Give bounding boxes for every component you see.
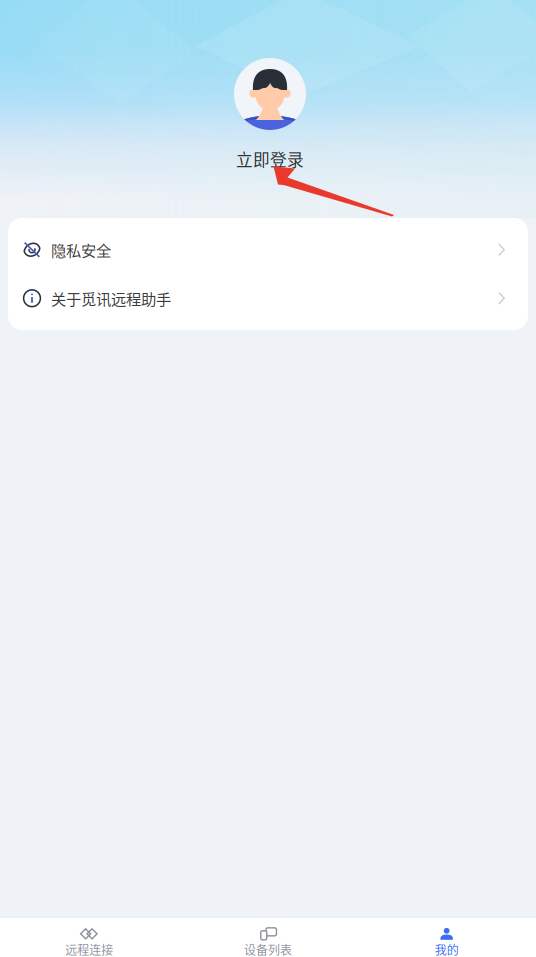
staticText: 关于觅讯远程助手 — [51, 287, 171, 309]
button[interactable]: 我的 — [357, 918, 536, 957]
button[interactable]: 设备列表 — [179, 918, 357, 957]
staticText: 我的 — [435, 941, 459, 957]
button[interactable]: 隐私安全 — [8, 225, 528, 274]
button[interactable]: 远程连接 — [0, 918, 179, 957]
staticText: 立即登录 — [236, 147, 304, 171]
staticText: 设备列表 — [244, 941, 292, 957]
staticText: 远程连接 — [65, 941, 113, 957]
button[interactable]: 关于觅讯远程助手 — [8, 274, 528, 322]
staticText: 隐私安全 — [51, 239, 111, 261]
